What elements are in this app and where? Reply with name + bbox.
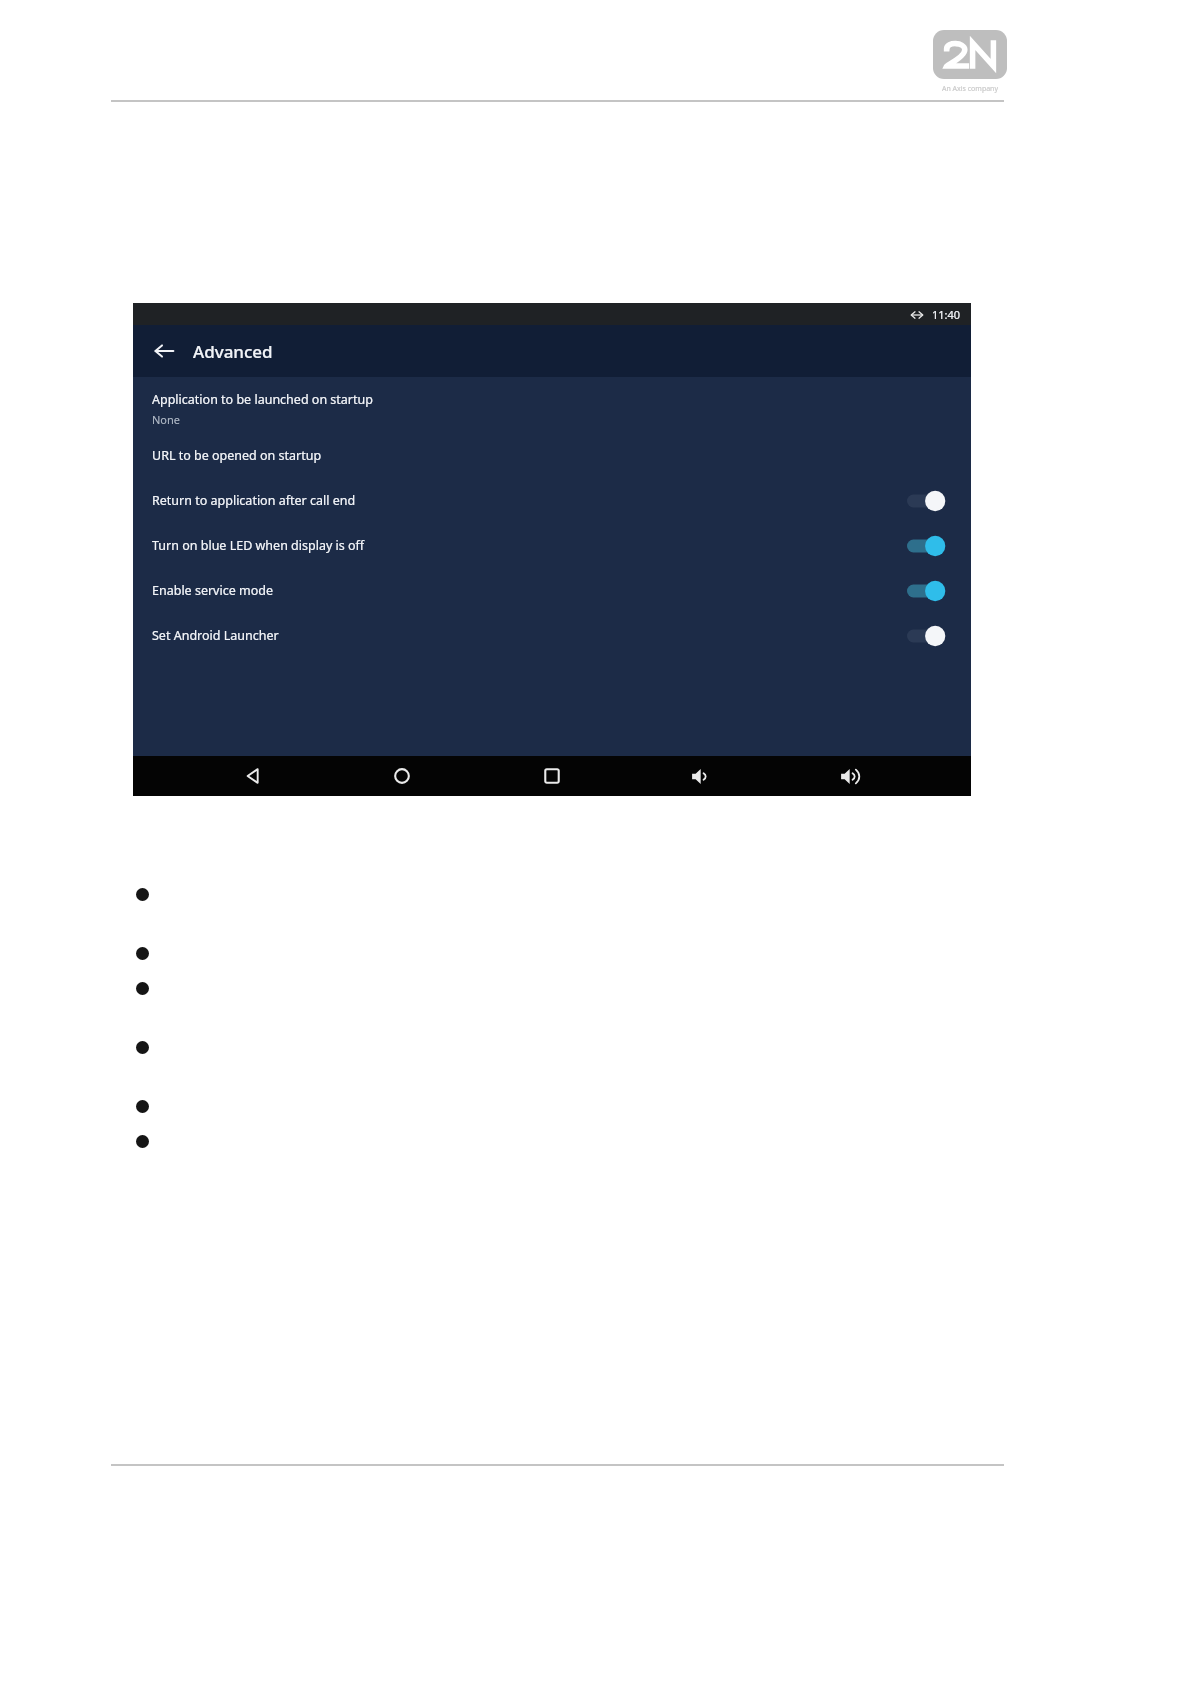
staticText: None bbox=[152, 412, 181, 427]
staticText: An Axis company bbox=[933, 84, 1007, 94]
staticText: Turn on blue LED when display is off bbox=[152, 537, 907, 554]
staticText: Return to application after call end bbox=[152, 492, 907, 509]
staticText: URL to be opened on startup bbox=[152, 447, 949, 464]
button[interactable]: Enabled bbox=[907, 578, 949, 604]
button[interactable]: Disabled bbox=[907, 623, 949, 649]
staticText: Advanced bbox=[193, 340, 273, 363]
button[interactable]: Return to application after call end bbox=[133, 478, 971, 523]
button[interactable]: URL to be opened on startup bbox=[133, 433, 971, 478]
button[interactable]: Volume up bbox=[821, 756, 881, 796]
staticText: 11:40 bbox=[932, 307, 961, 322]
staticText: Enable service mode bbox=[152, 582, 907, 599]
staticText: Application to be launched on startup bbox=[152, 391, 373, 408]
button[interactable]: Enable service mode bbox=[133, 568, 971, 613]
button[interactable]: Back bbox=[223, 756, 283, 796]
staticText: Set Android Launcher bbox=[152, 627, 907, 644]
button[interactable]: Application to be launched on startup bbox=[133, 377, 971, 433]
button[interactable]: Set Android Launcher bbox=[133, 613, 971, 658]
button[interactable]: Disabled bbox=[907, 488, 949, 514]
button[interactable]: Volume down bbox=[672, 756, 732, 796]
button[interactable]: Recent apps bbox=[522, 756, 582, 796]
button[interactable]: Back bbox=[145, 332, 183, 370]
button[interactable]: Enabled bbox=[907, 533, 949, 559]
button[interactable]: Home bbox=[372, 756, 432, 796]
button[interactable]: Turn on blue LED when display is off bbox=[133, 523, 971, 568]
